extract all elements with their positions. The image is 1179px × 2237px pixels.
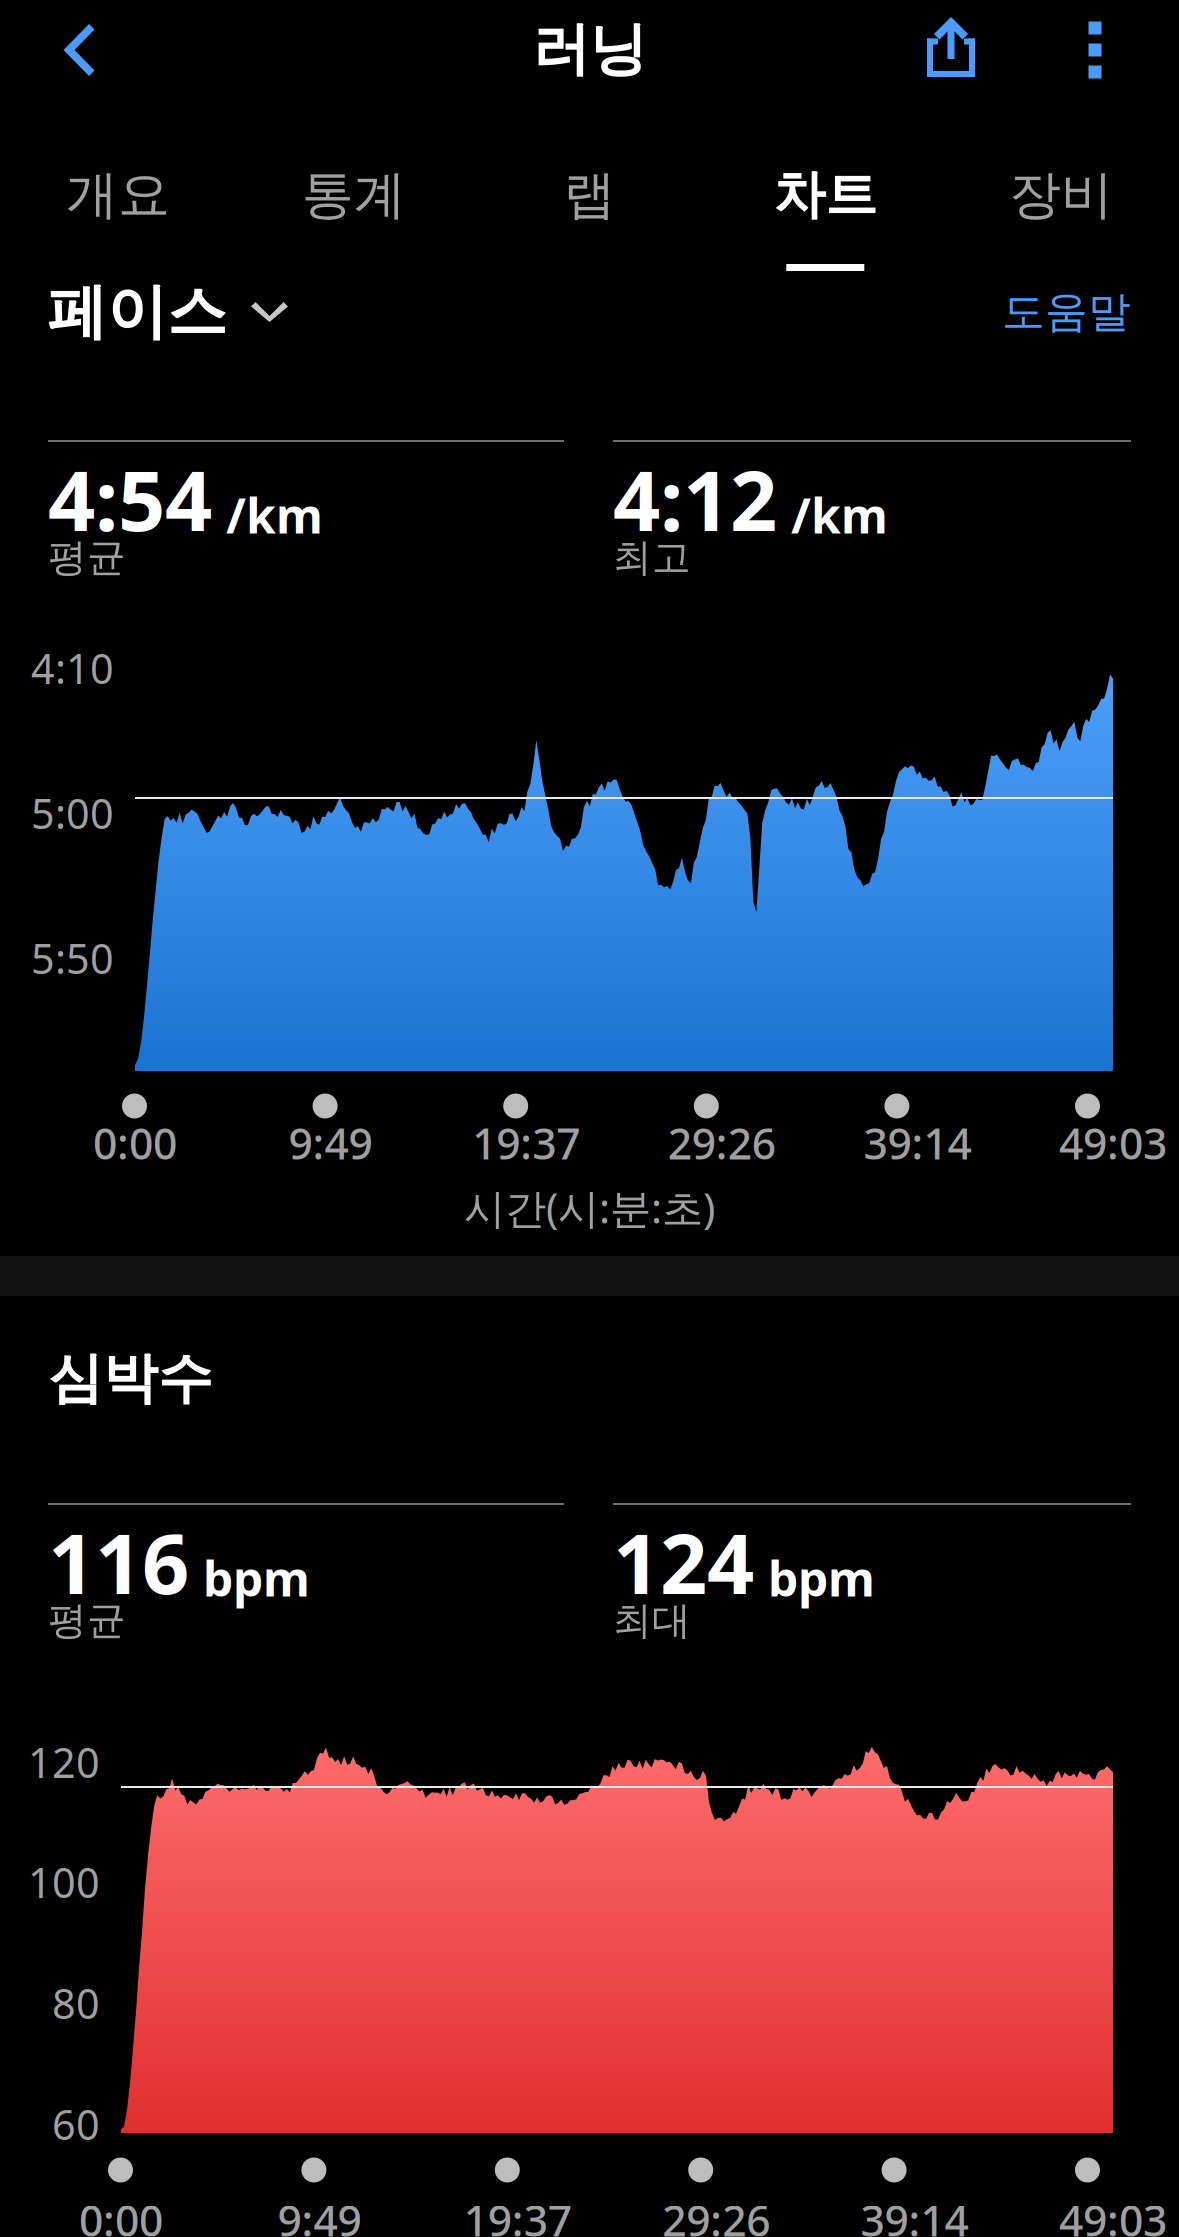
staticText: 도움말 [1002,286,1131,338]
staticText: 4:12 [613,444,777,554]
staticText: 29:26 [662,2192,770,2237]
staticText: 120 [28,1735,100,1789]
staticText: 차트 [773,163,877,227]
staticText: 0:00 [93,1115,177,1171]
staticText: /km [226,483,323,547]
button[interactable]: More options [1045,0,1145,100]
button[interactable]: Share [896,0,1006,97]
staticText: 통계 [302,163,406,227]
staticText: 116 [48,1507,189,1617]
staticText: 9:49 [289,1115,373,1171]
staticText: 평균 [48,534,126,581]
staticText: bpm [203,1546,310,1610]
staticText: 5:50 [31,931,114,985]
button[interactable]: 랩 [472,137,707,271]
staticText: 심박수 [48,1345,213,1412]
button[interactable]: 페이스 [47,273,288,351]
staticText: /km [791,483,888,547]
staticText: 49:03 [1059,1115,1167,1171]
staticText: 랩 [563,163,615,227]
staticText: 29:26 [668,1115,776,1171]
staticText: 최고 [613,534,691,581]
staticText: 80 [52,1976,100,2030]
button[interactable]: 통계 [236,137,472,271]
staticText: 19:37 [464,2192,572,2237]
staticText: 5:00 [31,786,114,840]
button[interactable]: 차트 [707,137,943,271]
staticText: 39:14 [863,1115,971,1171]
staticText: 60 [52,2097,100,2151]
staticText: 4:54 [48,444,212,554]
staticText: 39:14 [861,2192,969,2237]
staticText: 러닝 [532,14,646,85]
staticText: 19:37 [472,1115,580,1171]
button[interactable]: Back [24,0,134,100]
button[interactable]: 개요 [0,137,236,271]
button[interactable]: 장비 [943,137,1179,271]
staticText: 124 [613,1507,754,1617]
staticText: 9:49 [277,2192,361,2237]
staticText: 평균 [48,1597,126,1644]
staticText: 장비 [1009,163,1113,227]
staticText: 100 [28,1855,100,1909]
staticText: 최대 [613,1597,691,1644]
staticText: 0:00 [79,2192,163,2237]
staticText: bpm [768,1546,875,1610]
staticText: 시간(시:분:초) [464,1180,715,1235]
staticText: 페이스 [47,275,227,349]
button[interactable]: 도움말 [1002,272,1131,352]
staticText: 개요 [66,163,170,227]
staticText: 4:10 [31,641,114,695]
staticText: 49:03 [1059,2192,1167,2237]
